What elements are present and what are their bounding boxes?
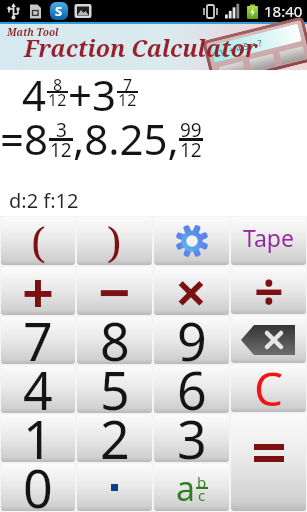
staticText: 12 [48, 89, 67, 111]
staticText: S [55, 2, 63, 20]
button[interactable]: 2 [77, 415, 152, 462]
staticText: +3 [68, 66, 117, 123]
staticText: 7 [23, 317, 53, 364]
staticText: Fraction Calculator [24, 32, 258, 63]
staticText: ÷ [254, 267, 284, 314]
staticText: ( [31, 217, 46, 265]
staticText: − [98, 267, 131, 315]
staticText: 1½ + 4.5 = ? [211, 36, 263, 60]
staticText: 6 [177, 366, 207, 413]
button[interactable] [231, 414, 306, 511]
button[interactable]: 0 [1, 464, 75, 511]
staticText: Math Tool [7, 25, 59, 39]
button[interactable] [77, 464, 152, 511]
staticText: 3 [56, 117, 67, 143]
button[interactable]: ( [1, 217, 75, 265]
button[interactable]: × [154, 267, 229, 315]
staticText: 8 [100, 317, 130, 364]
staticText: 1 [23, 415, 53, 462]
staticText: 8 [53, 74, 63, 96]
staticText: 99 [180, 117, 202, 143]
staticText: 4 [22, 66, 47, 123]
staticText: 0 [23, 464, 53, 511]
button[interactable] [231, 316, 306, 363]
staticText: a [176, 465, 196, 511]
staticText: ) [107, 217, 122, 265]
button[interactable]: Tape [231, 217, 306, 265]
button[interactable]: 7 [1, 317, 75, 364]
staticText: c [198, 485, 206, 505]
button[interactable]: + [1, 267, 75, 315]
button[interactable]: − [77, 267, 152, 315]
button[interactable]: ) [77, 217, 152, 265]
staticText: 5 [100, 366, 130, 413]
staticText: × [175, 267, 208, 315]
button[interactable]: 5 [77, 366, 152, 413]
staticText: 2 [100, 415, 130, 462]
button[interactable]: ÷ [231, 267, 306, 314]
staticText: 12 [50, 137, 72, 163]
button[interactable] [154, 217, 229, 265]
button[interactable]: 3 [154, 415, 229, 462]
staticText: 4 [23, 366, 53, 413]
staticText: 12 [180, 137, 202, 163]
staticText: =8 [0, 110, 49, 167]
button[interactable]: a [154, 464, 229, 511]
button[interactable]: 6 [154, 366, 229, 413]
staticText: 3 [177, 415, 207, 462]
button[interactable]: 9 [154, 317, 229, 364]
button[interactable]: C [231, 365, 306, 412]
button[interactable]: 8 [77, 317, 152, 364]
staticText: + [22, 267, 55, 315]
staticText: 9 [177, 317, 207, 364]
staticText: 12 [118, 89, 137, 111]
staticText: Tape [243, 222, 294, 253]
staticText: 7 [123, 74, 133, 96]
button[interactable]: 4 [1, 366, 75, 413]
staticText: d:2 f:12 [9, 187, 79, 214]
staticText: 18:40 [264, 1, 303, 21]
staticText: b [197, 472, 207, 492]
button[interactable]: 1 [1, 415, 75, 462]
staticText: ,8.25, [73, 110, 179, 167]
staticText: C [254, 365, 284, 412]
